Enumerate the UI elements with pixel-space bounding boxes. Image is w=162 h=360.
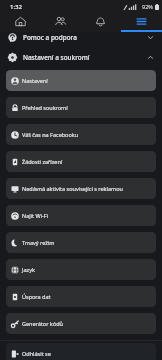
button[interactable]: Nedávná aktivita související s reklamou <box>6 178 156 199</box>
staticText: Tmavý režim <box>22 239 55 246</box>
button[interactable]: Friends <box>40 13 80 32</box>
button[interactable]: Úspora dat <box>6 286 156 307</box>
button[interactable]: Menu <box>121 13 162 32</box>
button[interactable]: Jazyk <box>6 259 156 280</box>
button[interactable]: Home <box>0 13 40 32</box>
button[interactable]: Žádosti zařízení <box>6 151 156 172</box>
staticText: Nastavení <box>22 77 48 84</box>
staticText: Nastavení a soukromí <box>23 53 90 62</box>
button[interactable]: Pomoc a podpora <box>0 32 162 47</box>
button[interactable]: Najít Wi-Fi <box>6 205 156 226</box>
staticText: Jazyk <box>22 266 35 273</box>
staticText: 92% <box>142 3 153 10</box>
button[interactable]: Odhlásit se <box>6 343 156 360</box>
staticText: Odhlásit se <box>22 350 51 357</box>
button[interactable]: Tmavý režim <box>6 232 156 253</box>
staticText: Váš čas na Facebooku <box>22 131 79 138</box>
staticText: Pomoc a podpora <box>23 33 77 42</box>
staticText: Najít Wi-Fi <box>22 212 49 219</box>
staticText: Nedávná aktivita související s reklamou <box>22 185 123 192</box>
button[interactable]: Nastavení <box>6 70 156 91</box>
button[interactable]: Nastavení a soukromí <box>0 47 162 67</box>
staticText: Přehled soukromí <box>22 104 68 111</box>
button[interactable]: Notifications <box>80 13 121 32</box>
staticText: Generátor kódů <box>22 320 63 327</box>
staticText: Žádosti zařízení <box>22 158 63 165</box>
button[interactable]: Váš čas na Facebooku <box>6 124 156 145</box>
button[interactable]: Generátor kódů <box>6 313 156 334</box>
staticText: Úspora dat <box>22 293 51 300</box>
staticText: 1:32 <box>10 3 22 11</box>
button[interactable]: Přehled soukromí <box>6 97 156 118</box>
